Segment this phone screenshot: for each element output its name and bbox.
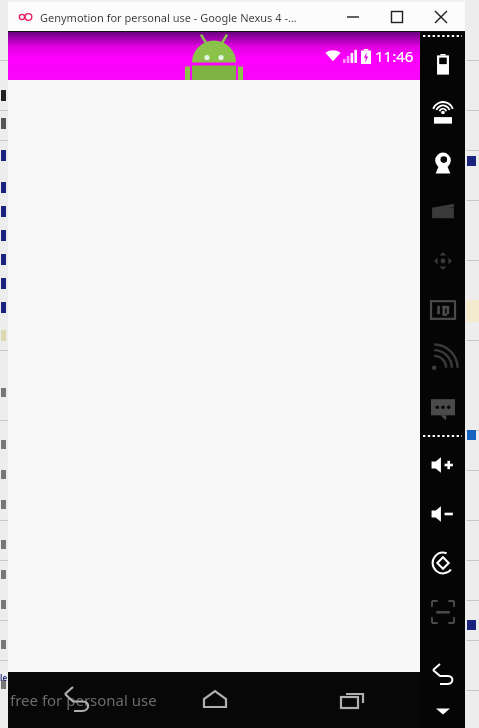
button[interactable]: Video	[420, 187, 465, 236]
button[interactable]: Back	[8, 672, 146, 728]
staticText: free for personal use	[10, 690, 157, 710]
button[interactable]: Volume down	[420, 489, 465, 538]
button[interactable]: More	[420, 698, 465, 724]
button[interactable]: Close	[419, 2, 463, 32]
staticText: le	[0, 672, 8, 683]
button[interactable]: One to one	[420, 587, 465, 636]
staticText: Genymotion for personal use - Google Nex…	[40, 10, 331, 25]
button[interactable]: SMS	[420, 383, 465, 432]
button[interactable]: Accelerometer	[420, 236, 465, 285]
button[interactable]: Back	[420, 649, 465, 698]
button[interactable]: Maximize	[375, 2, 419, 32]
button[interactable]: Network	[420, 334, 465, 383]
button[interactable]: Home	[146, 672, 283, 728]
button[interactable]: GPS	[420, 89, 465, 138]
button[interactable]: Rotate	[420, 538, 465, 587]
button[interactable]: Identifiers	[420, 285, 465, 334]
button[interactable]: Battery	[420, 40, 465, 89]
button[interactable]: Volume up	[420, 440, 465, 489]
button[interactable]: Minimize	[331, 2, 375, 32]
button[interactable]: Camera	[420, 138, 465, 187]
button[interactable]: Recents	[283, 672, 420, 728]
staticText: 11:46	[375, 46, 414, 66]
